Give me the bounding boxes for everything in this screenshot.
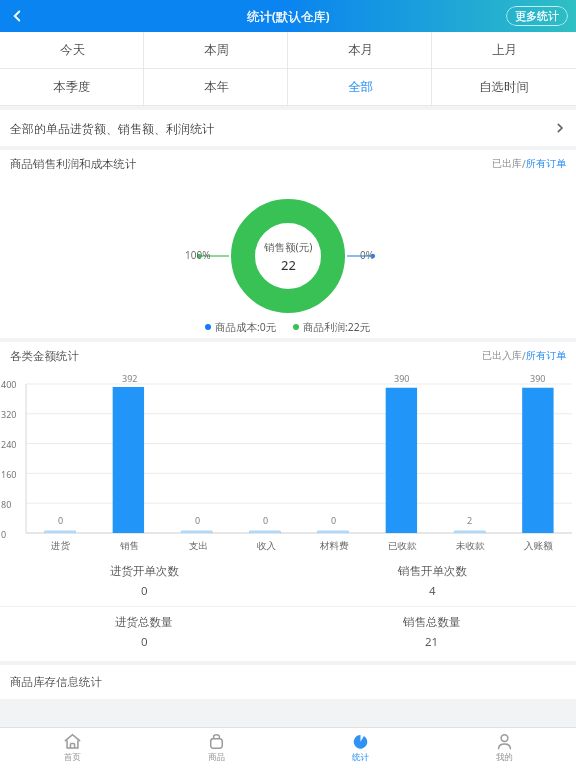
staticText: 所有订单	[526, 349, 566, 362]
button[interactable]: 商品库存信息统计	[0, 665, 576, 699]
staticText: 上月	[492, 42, 517, 58]
staticText: 商品库存信息统计	[10, 675, 102, 689]
staticText: 未收款	[456, 540, 485, 552]
staticText: /	[522, 157, 526, 171]
staticText: 进货总数量	[115, 615, 173, 629]
staticText: 240	[1, 438, 17, 450]
button[interactable]: 首页	[0, 728, 144, 768]
staticText: 100%	[185, 248, 211, 262]
staticText: 21	[425, 634, 439, 650]
staticText: 4	[429, 583, 436, 599]
staticText: 80	[1, 498, 12, 510]
staticText: 入账额	[524, 540, 553, 552]
button[interactable]: 我的	[432, 728, 576, 768]
button[interactable]: 全部	[288, 69, 432, 105]
staticText: 160	[1, 468, 17, 480]
staticText: 商品	[208, 752, 225, 763]
button[interactable]: 统计	[288, 728, 432, 768]
staticText: 全部的单品进货额、销售额、利润统计	[10, 121, 554, 136]
button[interactable]: Back	[0, 0, 34, 32]
staticText: 390	[394, 372, 410, 384]
staticText: 支出	[189, 540, 208, 552]
staticText: 392	[122, 372, 138, 384]
staticText: 已出库	[492, 157, 522, 170]
staticText: 各类金额统计	[10, 349, 482, 363]
staticText: /	[522, 349, 526, 363]
staticText: 已出入库	[482, 349, 522, 362]
staticText: 自选时间	[479, 79, 529, 95]
staticText: 0	[1, 528, 7, 540]
staticText: 2	[467, 514, 473, 526]
staticText: 所有订单	[526, 157, 566, 170]
staticText: 统计(默认仓库)	[247, 8, 330, 25]
staticText: 0%	[360, 248, 375, 262]
staticText: 390	[530, 372, 546, 384]
button[interactable]: 更多统计	[506, 6, 568, 26]
staticText: 销售	[120, 540, 139, 552]
staticText: 首页	[64, 752, 81, 763]
button[interactable]: 自选时间	[432, 69, 576, 105]
staticText: 商品利润:22元	[303, 320, 371, 334]
staticText: 320	[1, 408, 17, 420]
staticText: 400	[1, 378, 17, 390]
staticText: 商品销售利润和成本统计	[10, 157, 492, 171]
staticText: 进货开单次数	[110, 564, 179, 578]
staticText: 收入	[257, 540, 276, 552]
staticText: 进货	[51, 540, 70, 552]
staticText: 材料费	[320, 540, 349, 552]
staticText: 22	[281, 256, 296, 274]
button[interactable]: 今天	[0, 32, 144, 68]
button[interactable]: 已出入库	[482, 349, 566, 363]
staticText: 0	[141, 634, 148, 650]
staticText: 已收款	[388, 540, 417, 552]
staticText: 我的	[496, 752, 513, 763]
staticText: 0	[195, 514, 201, 526]
staticText: 本月	[348, 42, 373, 58]
button[interactable]: 本季度	[0, 69, 144, 105]
staticText: 更多统计	[515, 9, 559, 23]
staticText: 统计	[352, 752, 369, 763]
staticText: 商品成本:0元	[215, 320, 277, 334]
button[interactable]: 上月	[432, 32, 576, 68]
button[interactable]: 商品	[144, 728, 288, 768]
staticText: 销售额(元)	[264, 240, 313, 254]
staticText: 销售开单次数	[398, 564, 467, 578]
staticText: 销售总数量	[403, 615, 461, 629]
staticText: 本年	[204, 79, 229, 95]
staticText: 0	[331, 514, 337, 526]
staticText: 本季度	[53, 79, 91, 95]
staticText: 今天	[60, 42, 85, 58]
staticText: 全部	[348, 79, 373, 95]
staticText: 本周	[204, 42, 229, 58]
button[interactable]: 本月	[288, 32, 432, 68]
staticText: 0	[263, 514, 269, 526]
button[interactable]: 本周	[144, 32, 288, 68]
button[interactable]: 全部的单品进货额、销售额、利润统计	[0, 110, 576, 146]
staticText: 0	[141, 583, 148, 599]
button[interactable]: 已出库	[492, 157, 566, 171]
staticText: 0	[58, 514, 64, 526]
button[interactable]: 本年	[144, 69, 288, 105]
